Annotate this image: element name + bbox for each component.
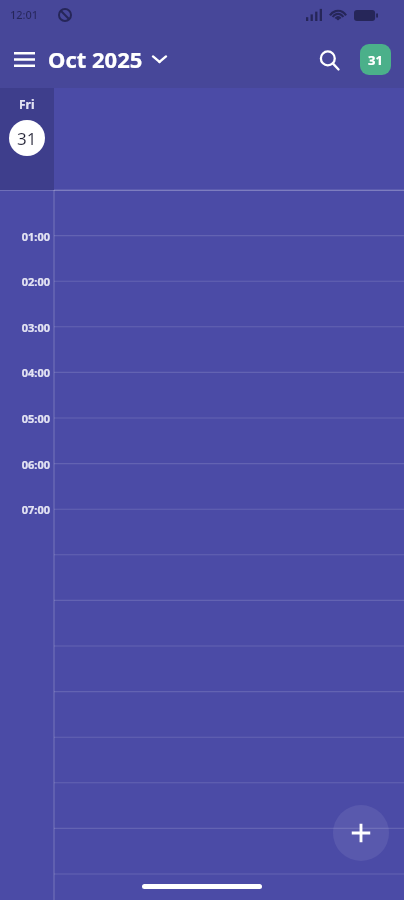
staticText: 31 — [368, 51, 383, 69]
staticText: 06:00 — [6, 457, 50, 472]
staticText: 01:00 — [6, 229, 50, 244]
staticText: 31 — [17, 127, 37, 150]
button[interactable]: Oct 2025 — [46, 40, 168, 78]
staticText: 04:00 — [6, 365, 50, 380]
staticText: 03:00 — [6, 320, 50, 335]
button[interactable]: Search — [312, 43, 346, 77]
staticText: 05:00 — [6, 411, 50, 426]
staticText: 12:01 — [10, 7, 39, 22]
button[interactable]: Fri — [0, 88, 54, 190]
staticText: Oct 2025 — [48, 44, 143, 74]
button[interactable]: Open navigation menu — [8, 43, 40, 75]
staticText: 07:00 — [6, 502, 50, 517]
button[interactable]: Create event — [333, 805, 389, 861]
button[interactable]: Account — [360, 44, 391, 75]
staticText: Fri — [19, 96, 35, 112]
staticText: 02:00 — [6, 274, 50, 289]
